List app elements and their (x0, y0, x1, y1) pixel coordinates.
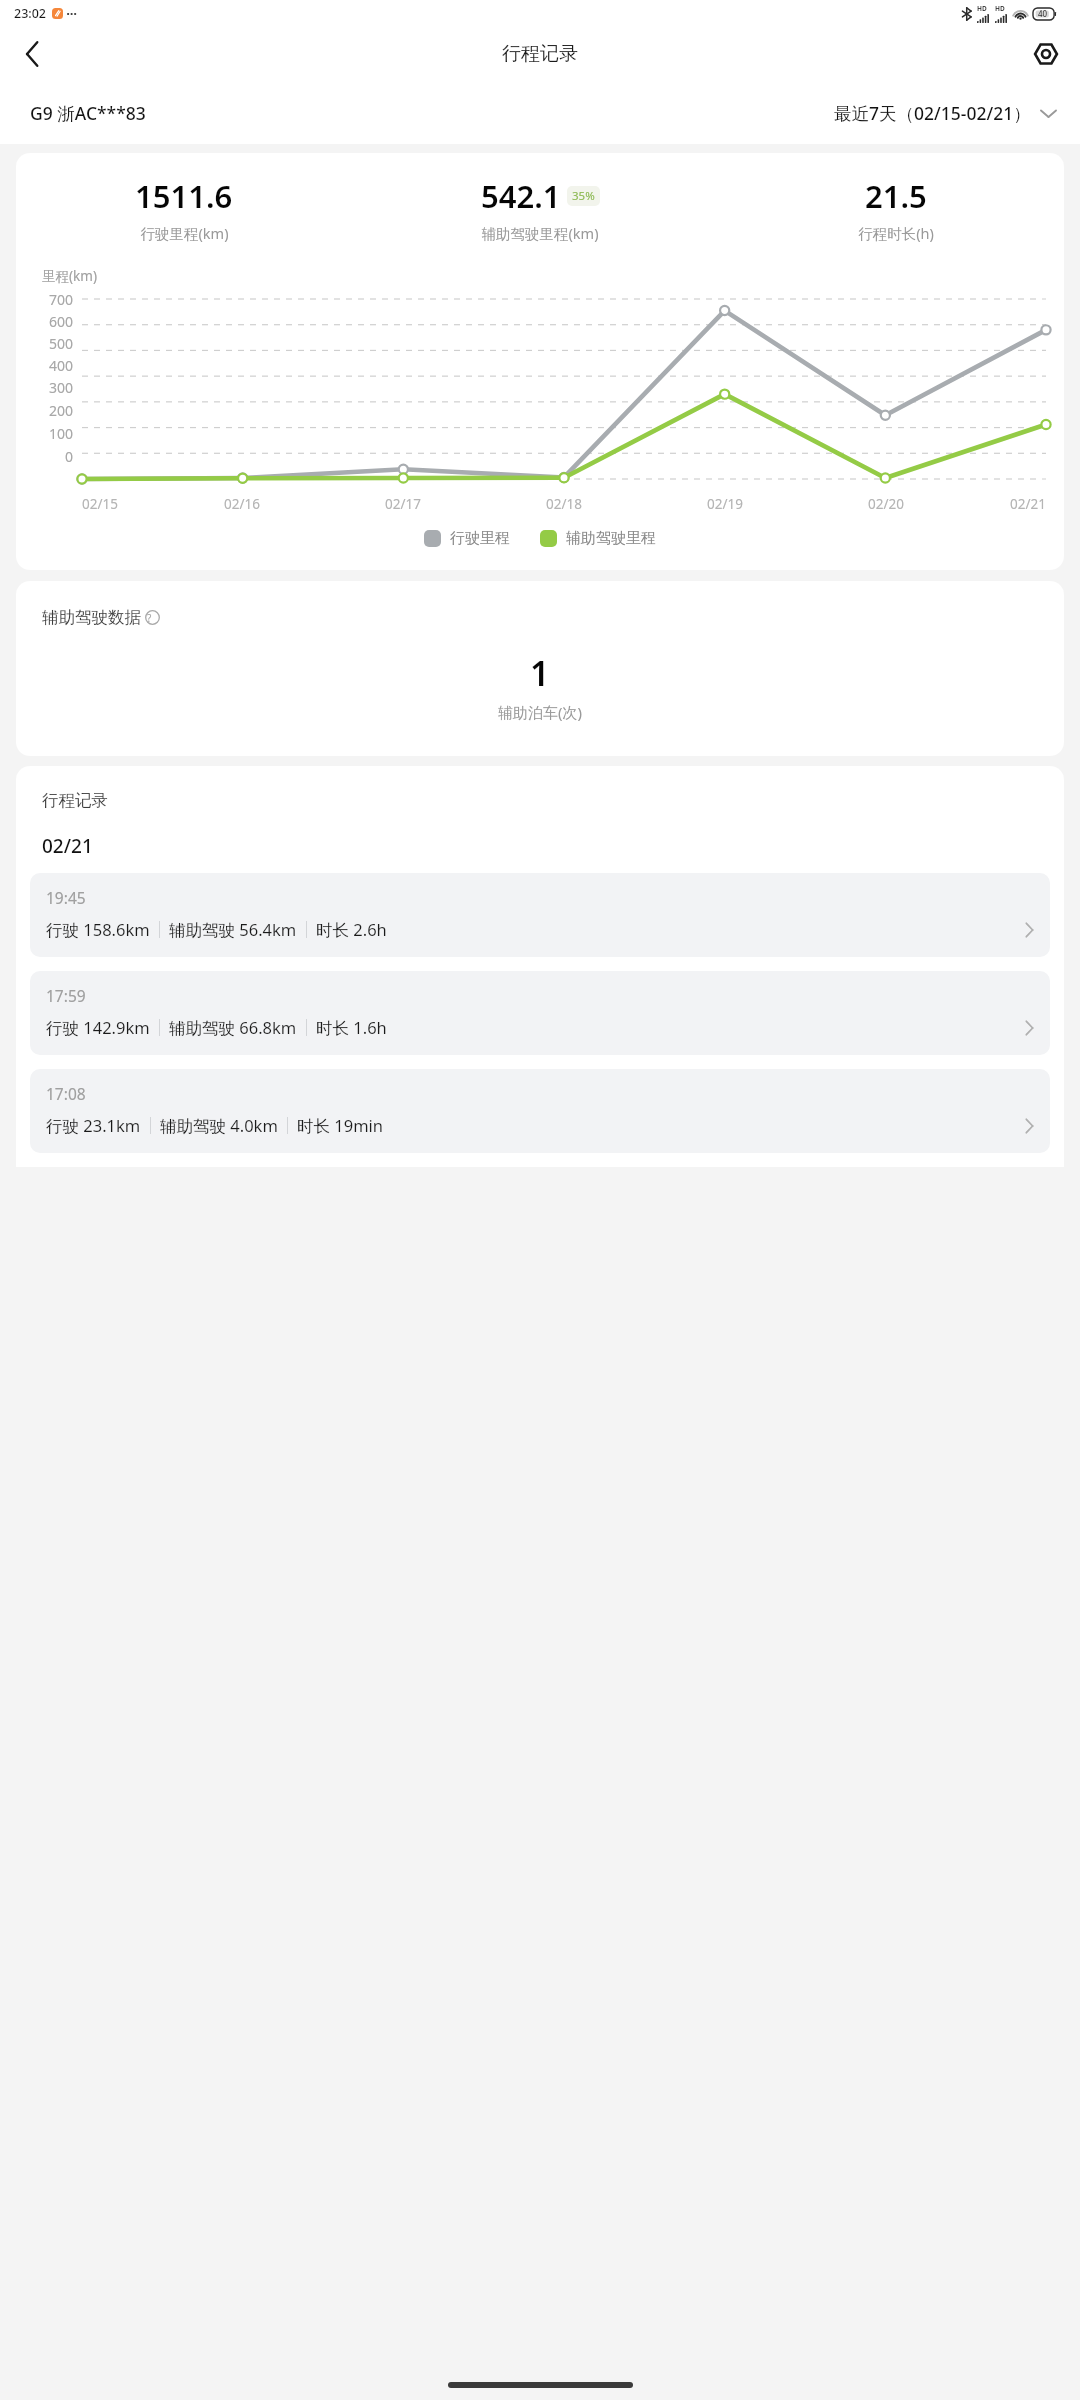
staticText: 02/16 (224, 495, 260, 513)
staticText: 17:59 (46, 985, 86, 1006)
staticText: 700 (49, 290, 74, 309)
staticText: 02/18 (546, 495, 582, 513)
button[interactable]: 最近7天（02/15-02/21） (834, 101, 1056, 125)
button[interactable]: 19:45 (30, 873, 1050, 957)
staticText: 02/21 (42, 833, 93, 859)
staticText: ? (147, 611, 152, 625)
staticText: 35% (572, 188, 595, 204)
staticText: 200 (49, 401, 74, 420)
staticText: 时长 19min (297, 1114, 384, 1137)
staticText: 行程记录 (502, 42, 578, 66)
staticText: 02/19 (707, 495, 743, 513)
staticText: 里程(km) (42, 267, 97, 285)
staticText: 行驶 158.6km (46, 918, 150, 941)
staticText: 400 (49, 356, 74, 375)
staticText: 1511.6 (135, 175, 233, 217)
staticText: 辅助驾驶 66.8km (169, 1016, 297, 1039)
staticText: 542.1 (481, 175, 561, 217)
staticText: 最近7天（02/15-02/21） (834, 101, 1031, 125)
staticText: 行驶里程 (450, 529, 510, 548)
staticText: 0 (65, 447, 74, 466)
staticText: 40 (1038, 8, 1048, 19)
staticText: HD (995, 4, 1005, 13)
staticText: 02/21 (1010, 495, 1046, 513)
staticText: 辅助驾驶里程 (566, 529, 656, 548)
button[interactable]: 辅助驾驶数据 (42, 607, 165, 628)
staticText: 行程时长(h) (858, 223, 934, 243)
staticText: 02/15 (82, 495, 118, 513)
staticText: 600 (49, 312, 74, 331)
button[interactable]: Back (8, 30, 56, 78)
staticText: HD (977, 4, 987, 13)
staticText: 100 (49, 424, 74, 443)
staticText: 辅助泊车(次) (498, 702, 583, 722)
staticText: 行程记录 (42, 790, 108, 811)
staticText: 时长 1.6h (316, 1016, 387, 1039)
button[interactable]: Settings (1022, 30, 1070, 78)
staticText: 21.5 (865, 175, 927, 217)
staticText: 辅助驾驶 56.4km (169, 918, 297, 941)
button[interactable]: 17:59 (30, 971, 1050, 1055)
staticText: 500 (49, 334, 74, 353)
button[interactable]: G9 浙AC***83 (30, 101, 146, 125)
staticText: 23:02 (14, 5, 47, 22)
staticText: 19:45 (46, 887, 86, 908)
staticText: 02/20 (868, 495, 904, 513)
staticText: 行驶 23.1km (46, 1114, 141, 1137)
staticText: 1 (530, 650, 550, 696)
staticText: 辅助驾驶里程(km) (481, 223, 599, 243)
staticText: 300 (49, 378, 74, 397)
staticText: 行驶 142.9km (46, 1016, 150, 1039)
staticText: 辅助驾驶数据 (42, 607, 141, 628)
staticText: 时长 2.6h (316, 918, 387, 941)
staticText: 行驶里程(km) (140, 223, 229, 243)
staticText: G9 浙AC***83 (30, 101, 146, 125)
staticText: 辅助驾驶 4.0km (160, 1114, 278, 1137)
button[interactable]: 17:08 (30, 1069, 1050, 1153)
staticText: 02/17 (385, 495, 421, 513)
staticText: 17:08 (46, 1083, 86, 1104)
